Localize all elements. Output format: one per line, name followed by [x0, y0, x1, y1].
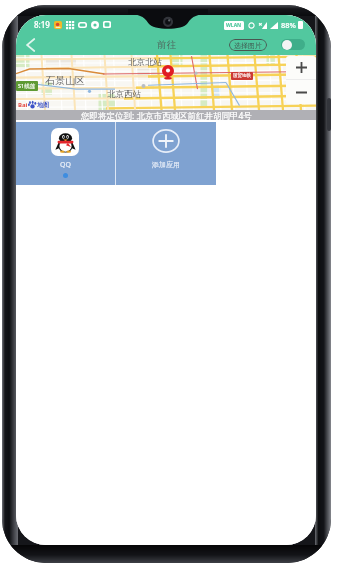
staticText: 选择图片 [234, 41, 262, 50]
staticText: 北京北站 [128, 57, 162, 68]
button[interactable]: Zoom out [286, 80, 316, 104]
staticText: 国贸地铁 [233, 73, 251, 79]
button[interactable]: Zoom in [286, 56, 316, 79]
button[interactable]: Toggle [281, 39, 305, 50]
staticText: 8:19 [34, 19, 50, 30]
staticText: 石景山区 [45, 74, 85, 87]
staticText: 地图 [37, 101, 49, 109]
button[interactable]: 添加应用 [116, 122, 215, 185]
staticText: QQ [60, 160, 71, 170]
staticText: 88% [281, 20, 296, 30]
button[interactable]: 选择图片 [229, 39, 267, 51]
staticText: WLAN [226, 22, 242, 29]
staticText: 添加应用 [152, 160, 180, 169]
staticText: Bai [18, 101, 28, 109]
staticText: 北京西站 [107, 89, 141, 100]
staticText: 前往 [157, 39, 176, 51]
button[interactable]: QQ [16, 122, 115, 185]
button[interactable]: Back [19, 34, 41, 55]
staticText: 您即将定位到: 北京市西城区前红井胡同甲4号 [81, 110, 252, 120]
staticText: S1线莲 [18, 82, 36, 90]
